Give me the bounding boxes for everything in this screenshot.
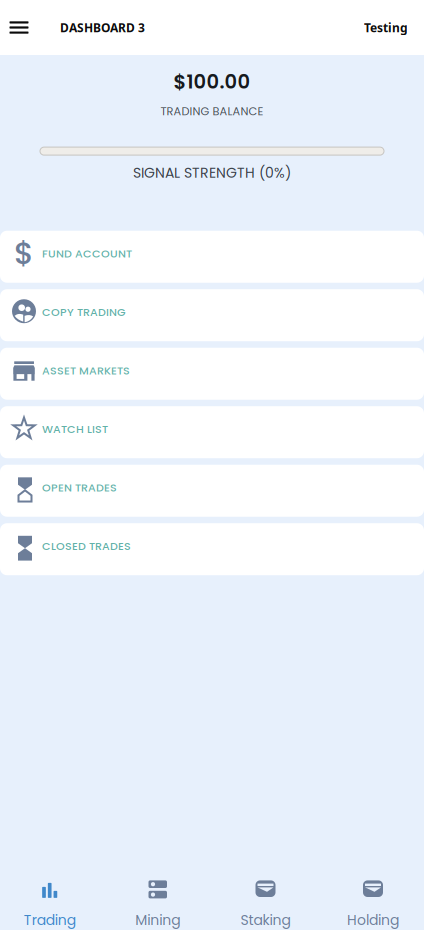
staticText: Testing [364, 19, 408, 35]
button[interactable]: Menu [0, 5, 38, 49]
staticText: SIGNAL STRENGTH (0%) [133, 163, 291, 183]
staticText: $ [14, 231, 34, 274]
staticText: TRADING BALANCE [160, 103, 263, 119]
button[interactable]: Holding [315, 880, 424, 930]
staticText: Trading [24, 910, 76, 930]
button[interactable]: Mining [99, 880, 216, 930]
staticText: CLOSED TRADES [42, 538, 131, 554]
staticText: Holding [347, 910, 399, 930]
button[interactable]: Staking [216, 880, 315, 930]
staticText: ASSET MARKETS [42, 363, 130, 378]
button[interactable]: CLOSED TRADES [0, 523, 424, 575]
button[interactable]: $ [0, 231, 424, 283]
staticText: OPEN TRADES [42, 480, 117, 495]
button[interactable]: Trading [0, 880, 99, 930]
staticText: DASHBOARD 3 [60, 19, 145, 35]
staticText: COPY TRADING [42, 304, 126, 320]
button[interactable]: ASSET MARKETS [0, 348, 424, 400]
staticText: FUND ACCOUNT [42, 246, 132, 261]
button[interactable]: OPEN TRADES [0, 465, 424, 517]
staticText: WATCH LIST [42, 421, 108, 437]
staticText: Mining [135, 910, 180, 930]
button[interactable]: COPY TRADING [0, 289, 424, 341]
button[interactable]: Testing [364, 9, 424, 45]
staticText: Staking [240, 910, 290, 930]
button[interactable]: WATCH LIST [0, 406, 424, 458]
staticText: $100.00 [173, 68, 250, 95]
